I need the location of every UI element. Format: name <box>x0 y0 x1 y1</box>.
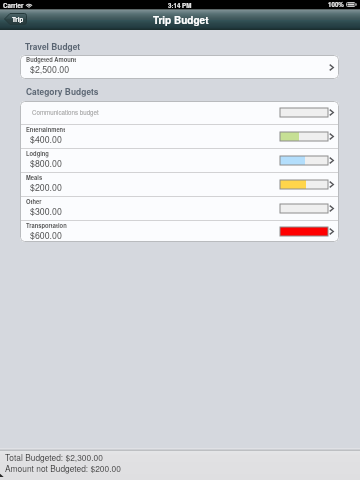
staticText: Category Budgets <box>26 86 99 98</box>
staticText: Meals <box>26 173 43 181</box>
staticText: Amount not Budgeted: $200.00 <box>5 462 121 474</box>
staticText: $2,500.00 <box>30 63 70 76</box>
button[interactable]: Lodging <box>20 149 339 172</box>
button[interactable]: Entertainment <box>20 125 339 148</box>
staticText: $300.00 <box>30 205 62 218</box>
staticText: Budgeted Amount <box>26 55 77 63</box>
staticText: Other <box>26 197 42 205</box>
staticText: Carrier <box>3 1 24 10</box>
staticText: Communications budget <box>32 108 99 117</box>
button[interactable]: Budgeted Amount <box>20 55 339 79</box>
staticText: Trip <box>12 15 24 24</box>
button[interactable]: Trip <box>4 13 27 25</box>
staticText: $800.00 <box>30 157 62 170</box>
button[interactable]: Transportation <box>20 221 339 242</box>
staticText: Transportation <box>26 221 67 229</box>
button[interactable]: Communications budget <box>20 101 339 124</box>
staticText: $400.00 <box>30 133 62 146</box>
staticText: Total Budgeted: $2,300.00 <box>5 451 103 463</box>
staticText: Entertainment <box>26 125 66 133</box>
staticText: $200.00 <box>30 181 62 194</box>
staticText: Trip Budget <box>153 13 209 27</box>
button[interactable]: Meals <box>20 173 339 196</box>
staticText: Travel Budget <box>25 41 81 53</box>
staticText: $600.00 <box>30 229 62 242</box>
staticText: Lodging <box>26 149 49 157</box>
button[interactable]: Other <box>20 197 339 220</box>
staticText: 3:14 PM <box>168 1 192 10</box>
staticText: 100% <box>328 0 344 9</box>
